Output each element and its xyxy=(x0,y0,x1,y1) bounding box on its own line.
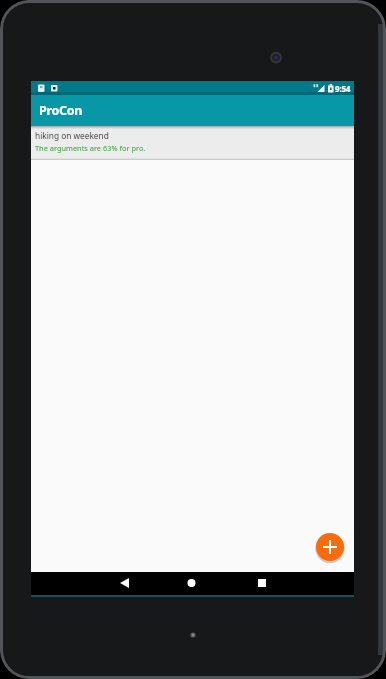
button[interactable] xyxy=(316,533,344,561)
staticText: ProCon xyxy=(39,102,83,119)
button[interactable] xyxy=(246,572,354,597)
button[interactable] xyxy=(31,572,138,597)
button[interactable]: hiking on weekend xyxy=(31,126,354,160)
staticText: The arguments are 63% for pro. xyxy=(35,143,146,153)
staticText: hiking on weekend xyxy=(35,130,109,141)
button[interactable] xyxy=(138,572,246,597)
staticText: 9:54 xyxy=(335,83,351,94)
